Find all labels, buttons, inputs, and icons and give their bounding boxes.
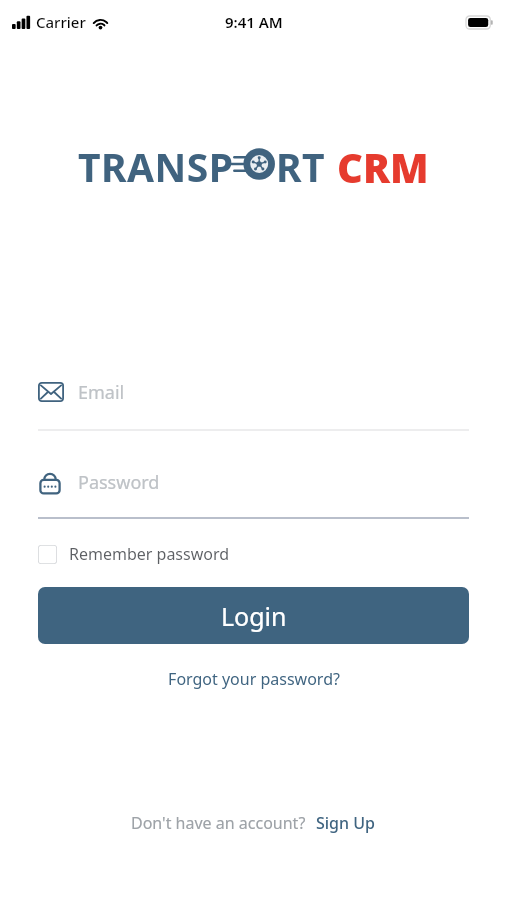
staticText: Remember password — [69, 543, 230, 565]
button[interactable]: Login — [38, 587, 469, 644]
button[interactable]: Forgot your password? — [160, 664, 348, 694]
button[interactable]: Password — [38, 463, 469, 519]
staticText: Carrier — [36, 12, 86, 32]
staticText: Don't have an account? — [131, 812, 306, 834]
staticText: Password — [78, 470, 160, 495]
button[interactable]: Remember password — [38, 543, 230, 565]
staticText: RT — [276, 140, 326, 188]
button[interactable]: Email — [38, 373, 469, 431]
staticText: CRM — [337, 140, 429, 188]
staticText: 9:41 AM — [225, 12, 283, 32]
staticText: Email — [78, 380, 125, 405]
button[interactable]: Sign Up — [314, 808, 377, 838]
staticText: TRANSP — [78, 140, 234, 188]
staticText: Login — [221, 599, 287, 633]
